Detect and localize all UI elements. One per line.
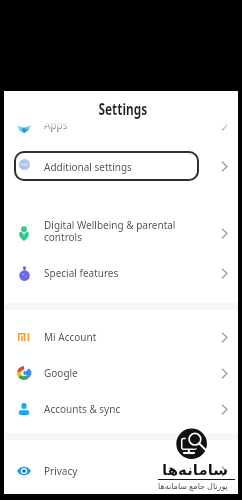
button[interactable]: Mi Account [4, 317, 238, 357]
staticText: پورتال جامع سامانه‌ها [158, 480, 228, 491]
staticText: Privacy [44, 464, 78, 478]
staticText: Accounts & sync [44, 402, 121, 416]
button[interactable]: Privacy [4, 451, 238, 491]
button[interactable]: Additional settings [14, 151, 199, 181]
staticText: controls [44, 230, 82, 244]
button[interactable]: Apps [4, 105, 238, 145]
staticText: Digital Wellbeing & parental [44, 218, 176, 232]
staticText: Apps [44, 118, 68, 132]
button[interactable]: Accounts & sync [4, 389, 238, 429]
other: Open [219, 404, 230, 415]
button[interactable]: Google [4, 353, 238, 393]
staticText: Settings [98, 98, 148, 119]
staticText: سامانه‌ها [162, 461, 229, 478]
other: Open [219, 268, 230, 279]
staticText: Mi Account [44, 330, 97, 344]
other: Open [219, 466, 230, 477]
button[interactable]: Digital Wellbeing & parental [4, 213, 238, 253]
staticText: Google [44, 366, 78, 380]
staticText: Additional settings [44, 160, 132, 174]
other: Open [219, 161, 230, 172]
button[interactable]: Open [4, 146, 238, 186]
other: Open [219, 332, 230, 343]
other: Open [219, 368, 230, 379]
other: Open [219, 120, 230, 131]
button[interactable]: Special features [4, 253, 238, 293]
other: Open [219, 228, 230, 239]
staticText: Special features [44, 266, 119, 280]
